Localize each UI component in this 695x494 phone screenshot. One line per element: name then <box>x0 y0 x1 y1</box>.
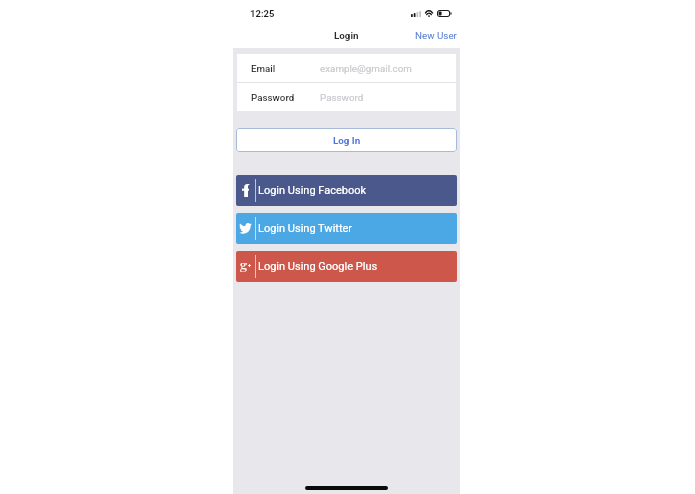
button[interactable]: Email <box>237 54 456 82</box>
staticText: New User <box>415 30 457 41</box>
staticText: Email <box>251 63 276 74</box>
button[interactable]: New User <box>409 27 460 44</box>
staticText: Login Using Twitter <box>258 222 353 235</box>
other: Wi-Fi <box>424 10 434 17</box>
button[interactable]: Twitter <box>236 213 457 244</box>
other: Google Plus <box>240 256 252 278</box>
other: Facebook <box>242 184 249 197</box>
staticText: Login <box>334 30 359 41</box>
button[interactable]: Password <box>237 83 456 111</box>
staticText: example@gmail.com <box>320 63 412 74</box>
button[interactable]: Facebook <box>236 175 457 206</box>
button[interactable]: Log In <box>236 128 457 152</box>
staticText: Password <box>251 92 295 103</box>
staticText: Log In <box>333 135 361 146</box>
staticText: Login Using Google Plus <box>258 260 378 273</box>
staticText: 12:25 <box>250 8 275 19</box>
staticText: Password <box>320 92 364 103</box>
staticText: g <box>240 255 248 273</box>
other: Battery <box>437 10 452 17</box>
staticText: Login Using Facebook <box>258 184 367 197</box>
button[interactable]: Google Plus <box>236 251 457 282</box>
other: Cellular signal <box>411 11 421 17</box>
other: Twitter <box>239 223 252 234</box>
